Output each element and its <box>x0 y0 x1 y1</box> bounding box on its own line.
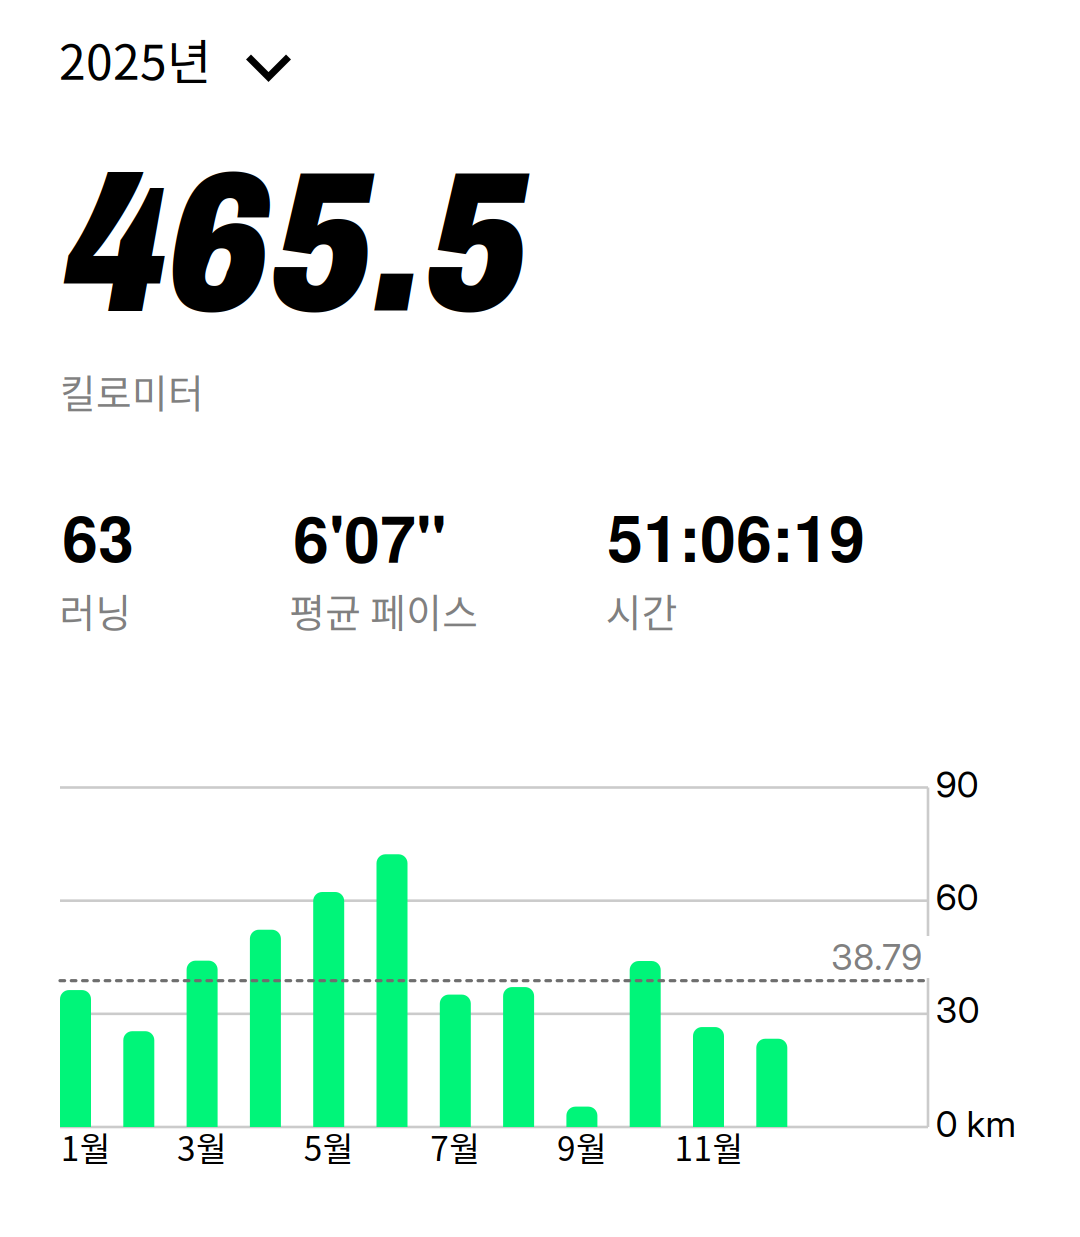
staticText: 60 <box>935 875 978 919</box>
staticText: 465.5 <box>65 136 529 352</box>
staticText: 30 <box>935 988 979 1032</box>
staticText: 11월 <box>674 1122 743 1171</box>
staticText: 0 km <box>935 1102 1016 1146</box>
staticText: 킬로미터 <box>60 363 204 419</box>
staticText: 1월 <box>61 1122 111 1171</box>
staticText: 2025년 <box>59 24 211 93</box>
staticText: 38.79 <box>831 935 922 979</box>
staticText: 9월 <box>557 1122 607 1171</box>
staticText: 러닝 <box>59 582 131 638</box>
staticText: 평균 페이스 <box>289 582 478 638</box>
staticText: 63 <box>62 490 134 582</box>
staticText: 5월 <box>304 1122 354 1171</box>
staticText: 7월 <box>430 1122 480 1171</box>
button[interactable]: 2025년 <box>48 10 298 84</box>
staticText: 6'07" <box>293 491 446 582</box>
staticText: 90 <box>935 762 978 806</box>
staticText: 3월 <box>177 1122 227 1171</box>
staticText: 시간 <box>606 582 678 638</box>
staticText: 51:06:19 <box>607 490 865 582</box>
